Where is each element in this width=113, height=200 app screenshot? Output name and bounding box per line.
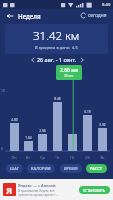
button[interactable]: сегодня — [79, 10, 109, 21]
staticText: 8:40 — [102, 2, 111, 8]
staticText: 4.80 — [11, 118, 18, 122]
staticText: 2.94 — [39, 129, 46, 133]
staticText: 1.64 — [25, 136, 32, 140]
button[interactable]: ШАГ — [6, 164, 23, 173]
button[interactable]: 4.80 — [7, 88, 21, 151]
staticText: Вс — [95, 155, 110, 160]
staticText: Я — [6, 184, 13, 196]
staticText: Чт — [50, 155, 65, 160]
staticText: Пн — [7, 155, 21, 160]
staticText: РАССТ — [90, 166, 103, 171]
button[interactable]: КАЛОРИИ — [27, 164, 55, 173]
staticText: сегодня — [88, 12, 107, 19]
staticText: Вт — [21, 155, 35, 160]
button[interactable]: 31.42 км — [5, 24, 108, 54]
button[interactable]: 1.64 — [21, 88, 35, 151]
button[interactable]: ВРЕМЯ — [60, 164, 82, 173]
staticText: 26 авг. - 1 сент. — [37, 56, 77, 63]
staticText: 2.66 км — [60, 67, 78, 74]
button[interactable]: Я — [0, 179, 113, 200]
staticText: Яндекс — с Алисой — [18, 183, 56, 188]
staticText: В приложении Яндекс всё нужное на одном … — [18, 189, 59, 197]
button[interactable]: 8.48 — [50, 88, 65, 151]
staticText: УСТАНОВИТЬ — [83, 188, 106, 193]
staticText: ВРЕМЯ — [64, 166, 78, 171]
staticText: 3.92 — [99, 123, 106, 127]
staticText: Ср — [35, 155, 50, 160]
button[interactable]: 6.19 — [80, 88, 95, 151]
button[interactable]: Next week — [77, 55, 86, 64]
staticText: 31.42 км — [33, 28, 80, 44]
staticText: В среднем в день: 4.5 — [35, 45, 78, 50]
button[interactable]: 2.94 — [35, 88, 50, 151]
button[interactable]: Previous week — [28, 55, 37, 64]
button[interactable] — [65, 88, 80, 151]
staticText: 8.48 — [54, 97, 61, 101]
button[interactable]: РАССТ — [86, 164, 107, 173]
button[interactable]: УСТАНОВИТЬ — [79, 186, 110, 194]
staticText: 30 авг. — [64, 74, 74, 78]
staticText: Неделя — [18, 12, 41, 20]
staticText: Сб — [80, 155, 95, 160]
button[interactable]: 3.92 — [95, 88, 110, 151]
staticText: ШАГ — [10, 166, 19, 171]
staticText: 0 — [1, 146, 3, 151]
staticText: КАЛОРИИ — [31, 166, 51, 171]
button[interactable]: Back — [4, 10, 15, 21]
button[interactable]: 2.66 км — [56, 65, 82, 80]
staticText: Пт — [65, 155, 80, 160]
staticText: 6.19 — [84, 110, 91, 114]
staticText: 10 — [1, 88, 5, 93]
